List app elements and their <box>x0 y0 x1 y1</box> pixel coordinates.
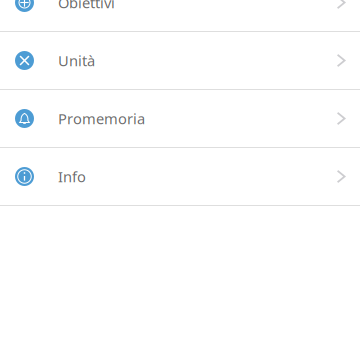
staticText: Obiettivi <box>58 0 115 12</box>
staticText: Info <box>58 166 86 186</box>
staticText: Unità <box>58 50 95 70</box>
button[interactable]: Unità <box>0 32 360 90</box>
button[interactable]: Info <box>0 148 360 206</box>
button[interactable]: Promemoria <box>0 90 360 148</box>
staticText: Promemoria <box>58 108 145 128</box>
button[interactable]: Obiettivi <box>0 0 360 32</box>
